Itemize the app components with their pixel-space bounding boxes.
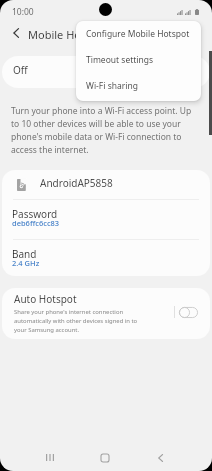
- staticText: Mobile Hotspot: [28, 27, 108, 42]
- button[interactable]: Navigate up: [5, 22, 27, 44]
- staticText: Auto Hotspot: [14, 292, 77, 306]
- button[interactable]: Auto Hotspot toggle: [175, 300, 201, 324]
- staticText: Turn your phone into a Wi-Fi access poin…: [11, 105, 198, 156]
- button[interactable]: Recents: [35, 444, 65, 471]
- staticText: Timeout settings: [86, 54, 154, 66]
- staticText: Configure Mobile Hotspot: [86, 28, 190, 40]
- button[interactable]: Off: [2, 56, 210, 88]
- staticText: AndroidAP5858: [40, 176, 113, 190]
- button[interactable]: Auto Hotspot: [2, 288, 210, 339]
- button[interactable]: Band: [2, 240, 210, 276]
- staticText: Password: [12, 207, 58, 221]
- button[interactable]: Back: [145, 444, 175, 471]
- button[interactable]: AndroidAP5858: [2, 170, 210, 199]
- button[interactable]: Password: [2, 200, 210, 239]
- button[interactable]: Home: [90, 444, 120, 471]
- staticText: Wi-Fi sharing: [86, 80, 138, 92]
- button[interactable]: Timeout settings: [76, 47, 201, 73]
- staticText: deb6ffc6cc83: [12, 218, 60, 228]
- staticText: 2.4 GHz: [12, 258, 40, 268]
- button[interactable]: Wi-Fi sharing: [76, 73, 201, 99]
- staticText: Share your phone's internet connection a…: [14, 308, 142, 334]
- staticText: Off: [13, 63, 28, 77]
- staticText: 10:00: [12, 6, 34, 18]
- button[interactable]: Configure Mobile Hotspot: [76, 21, 201, 47]
- staticText: Band: [12, 247, 37, 261]
